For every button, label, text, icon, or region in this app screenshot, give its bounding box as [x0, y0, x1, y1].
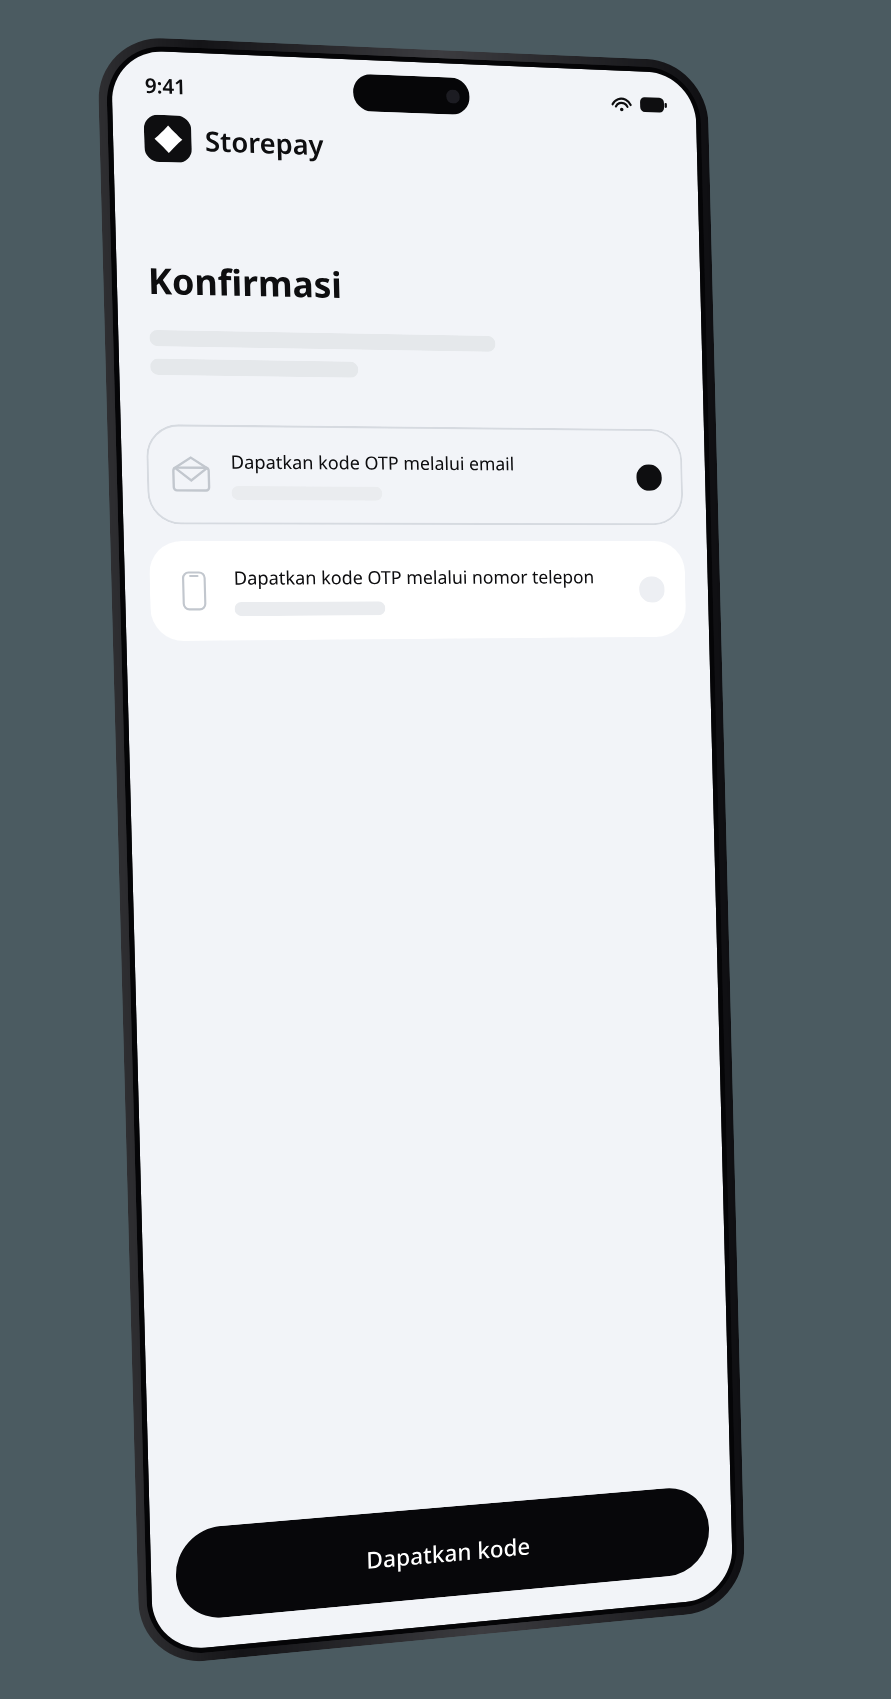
staticText: Dapatkan kode OTP melalui email [230, 449, 515, 476]
button[interactable]: Dapatkan kode OTP melalui nomor telepon [149, 541, 687, 641]
button[interactable]: Storepay [143, 114, 698, 179]
staticText: Konfirmasi [147, 256, 343, 309]
staticText: 9:41 [144, 71, 186, 101]
button[interactable]: Dapatkan kode OTP melalui email [145, 424, 684, 525]
staticText: Dapatkan kode OTP melalui nomor telepon [233, 565, 595, 591]
button[interactable]: Dapatkan kode [175, 1485, 710, 1622]
staticText: Storepay [204, 122, 324, 163]
staticText: Dapatkan kode [366, 1530, 530, 1575]
